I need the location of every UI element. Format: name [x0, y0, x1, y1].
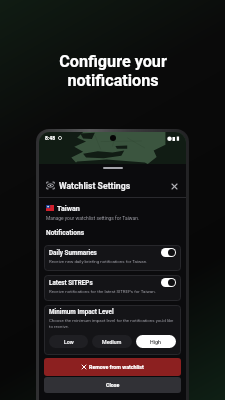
staticText: Minimum Impact Level — [49, 308, 114, 315]
staticText: Taiwan — [57, 204, 80, 212]
staticText: Low — [64, 339, 74, 345]
button[interactable]: Latest SITREPs — [44, 275, 181, 301]
staticText: Watchlist Settings — [59, 181, 131, 191]
button[interactable]: Daily Summaries — [44, 245, 181, 271]
button[interactable]: Medium — [92, 335, 132, 348]
staticText: Receive new daily briefing notifications… — [49, 259, 148, 264]
staticText: High — [150, 339, 162, 345]
staticText: Close — [106, 382, 120, 388]
staticText: Manage your watchlist settings for Taiwa… — [46, 215, 140, 221]
button[interactable]: Close — [169, 181, 179, 191]
staticText: Receive notifications for the latest SIT… — [49, 289, 156, 294]
button[interactable]: Close — [44, 377, 181, 393]
staticText: Medium — [102, 339, 122, 345]
staticText: Remove from watchlist — [89, 364, 144, 370]
staticText: Configure your — [59, 52, 167, 71]
staticText: Notifications — [46, 229, 85, 237]
staticText: Latest SITREPs — [49, 279, 93, 286]
button[interactable]: Low — [49, 335, 88, 348]
staticText: notifications — [67, 71, 159, 90]
button[interactable]: Remove from watchlist — [44, 358, 181, 376]
staticText: Daily Summaries — [49, 249, 97, 256]
staticText: 8:48 — [45, 135, 56, 141]
staticText: Choose the minimum impact level for the … — [49, 318, 176, 329]
button[interactable]: High — [136, 335, 176, 348]
